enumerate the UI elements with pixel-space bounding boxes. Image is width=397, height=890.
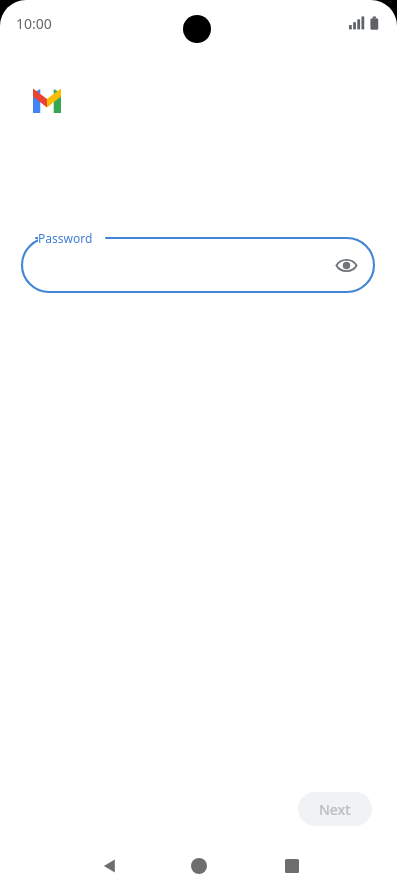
staticText: Password (38, 230, 93, 246)
button[interactable]: Home (175, 842, 223, 890)
button[interactable]: Show password (22, 238, 374, 292)
button[interactable]: Back (86, 842, 134, 890)
button[interactable]: Next (298, 792, 372, 826)
staticText: Next (319, 800, 351, 819)
button[interactable]: Show password (326, 245, 366, 285)
staticText: 10:00 (16, 14, 52, 33)
button[interactable]: Recent apps (268, 842, 316, 890)
